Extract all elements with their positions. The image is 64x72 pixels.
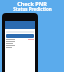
staticText: Status Prediction (13, 6, 52, 12)
button[interactable] (6, 34, 34, 38)
staticText: Check PNR (17, 0, 47, 7)
